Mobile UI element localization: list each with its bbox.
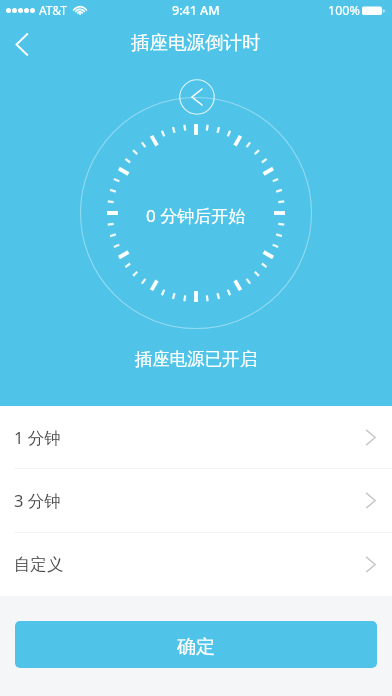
button[interactable]: 3 分钟: [0, 469, 392, 532]
staticText: 9:41 AM: [172, 2, 220, 19]
button[interactable]: 确定: [15, 621, 377, 668]
staticText: 100%: [328, 2, 360, 19]
button[interactable]: 自定义: [0, 533, 392, 596]
staticText: 3 分钟: [14, 489, 61, 512]
staticText: 插座电源已开启: [0, 348, 392, 370]
staticText: 插座电源倒计时: [131, 31, 261, 54]
button[interactable]: Adjust timer: [179, 79, 215, 115]
staticText: 自定义: [14, 554, 64, 575]
staticText: 确定: [177, 635, 215, 659]
staticText: 0 分钟后开始: [146, 204, 246, 227]
staticText: AT&T: [39, 2, 67, 18]
button[interactable]: Back: [0, 20, 46, 68]
button[interactable]: 1 分钟: [0, 406, 392, 468]
staticText: 1 分钟: [14, 426, 61, 449]
